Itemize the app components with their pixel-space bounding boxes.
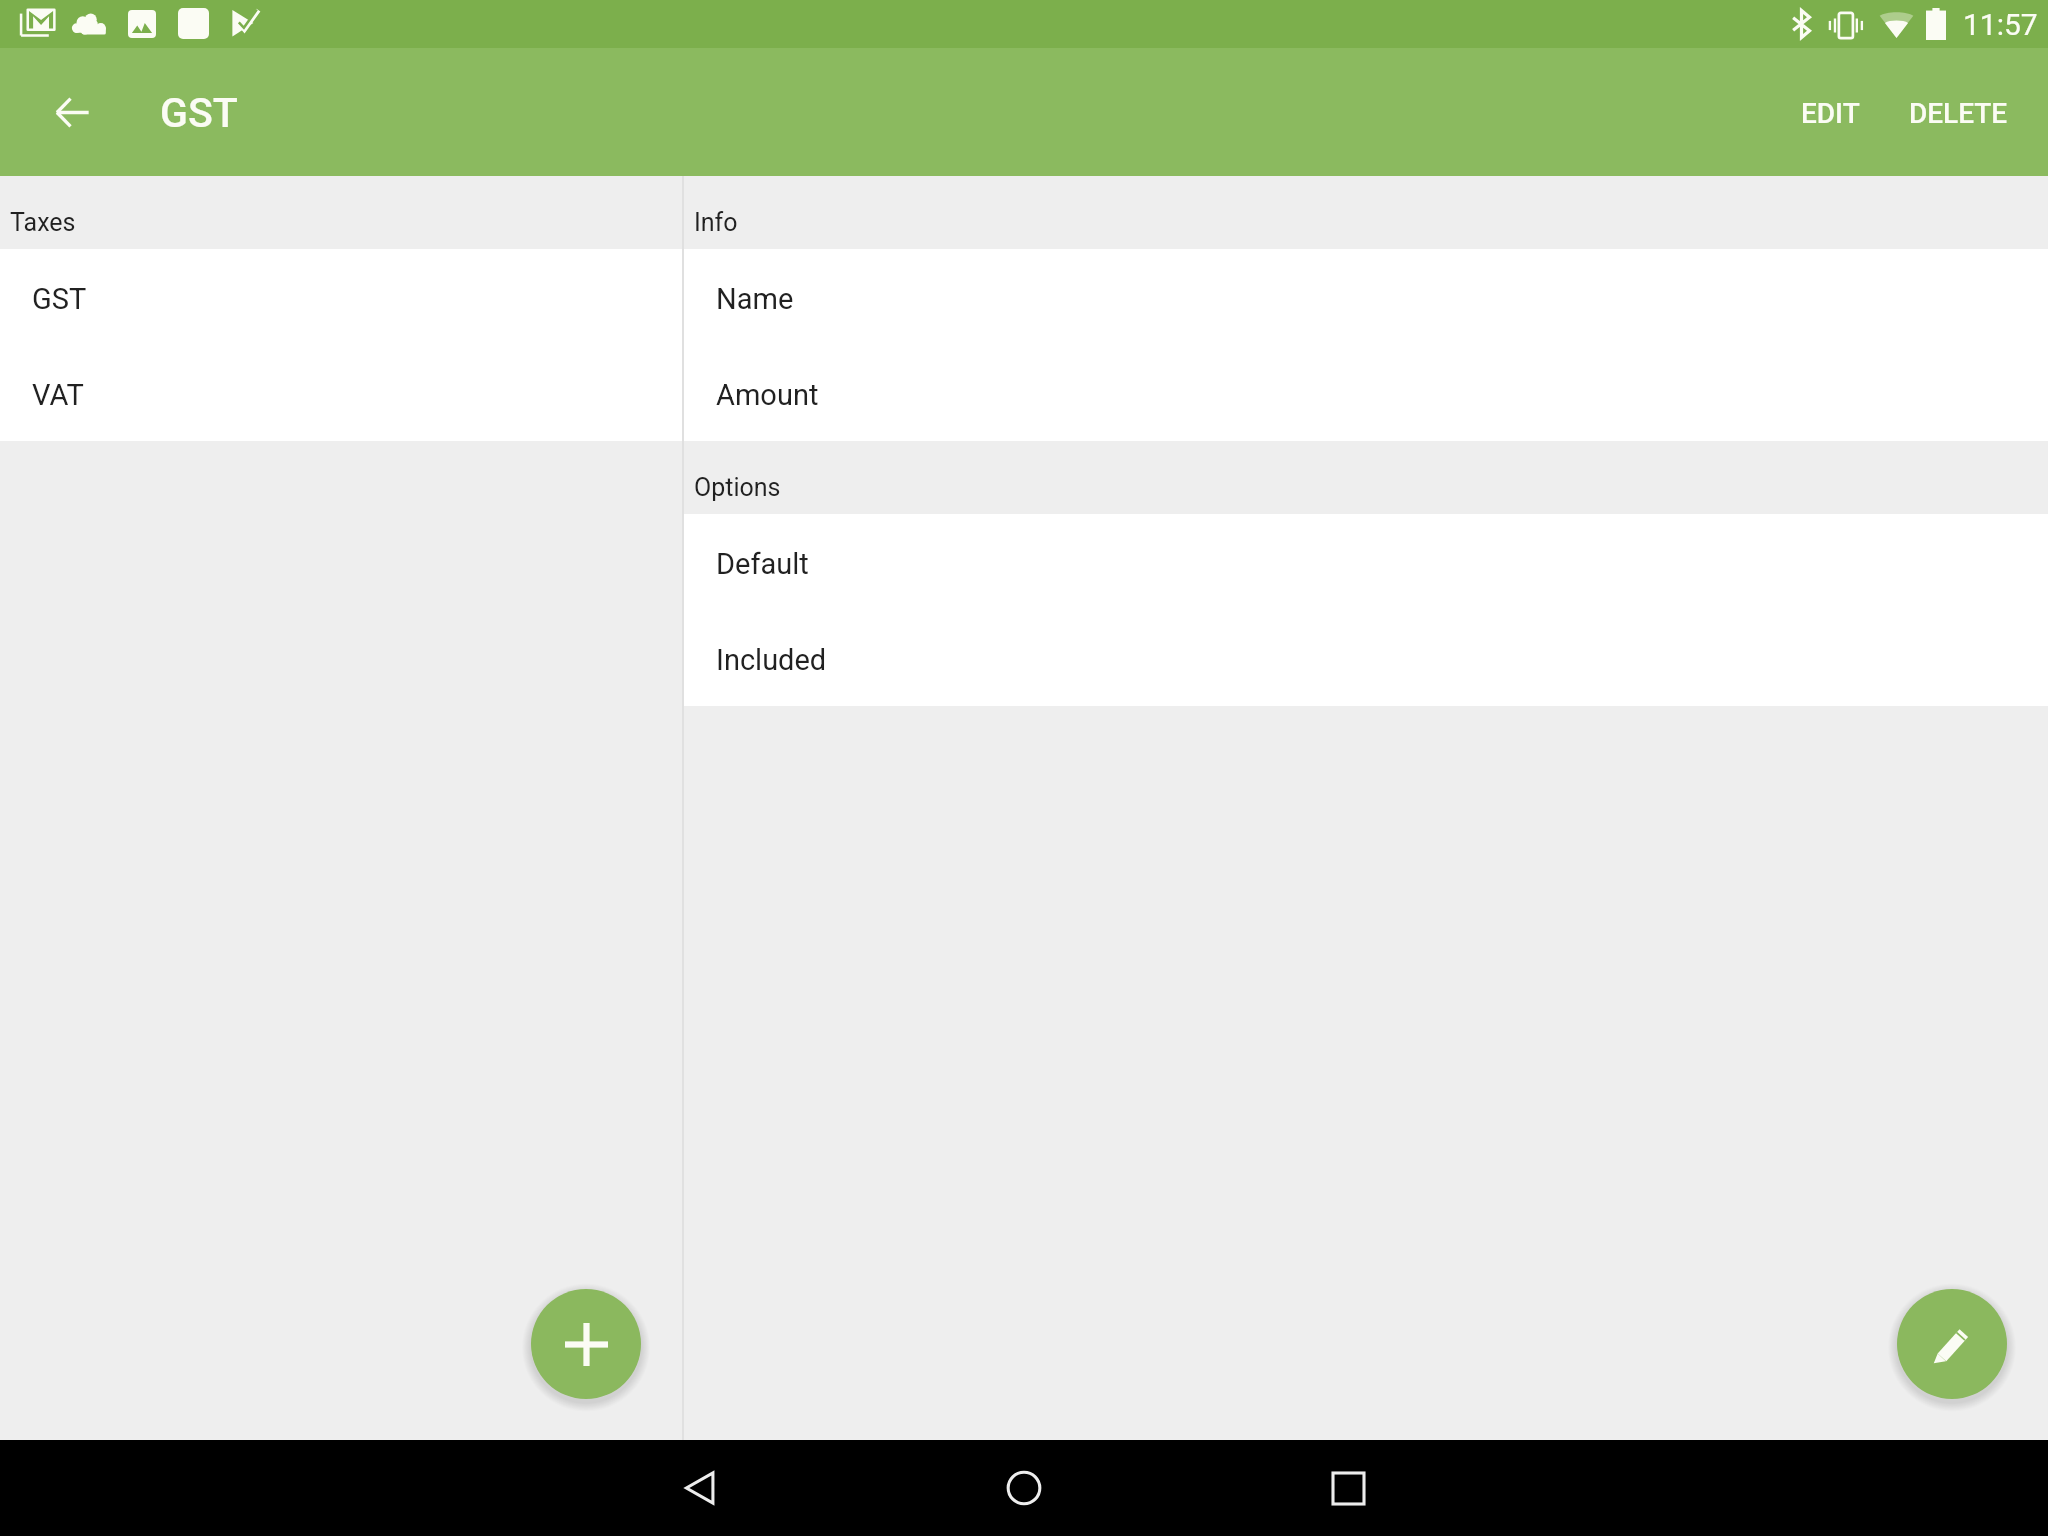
staticText: Included bbox=[716, 643, 827, 677]
staticText: Info bbox=[694, 208, 738, 237]
staticText: 11:57 bbox=[1963, 7, 2038, 42]
button[interactable]: Amount bbox=[684, 345, 2048, 441]
staticText: EDIT bbox=[1801, 97, 1860, 130]
staticText: VAT bbox=[32, 378, 84, 412]
button[interactable]: Recent apps bbox=[1300, 1440, 1396, 1536]
button[interactable]: Included bbox=[684, 610, 2048, 706]
staticText: DELETE bbox=[1909, 97, 2008, 130]
button[interactable]: Add new tax bbox=[531, 1289, 641, 1399]
button[interactable]: Home bbox=[976, 1440, 1072, 1536]
staticText: Options bbox=[694, 473, 781, 502]
button[interactable]: GST bbox=[0, 249, 682, 345]
staticText: Default bbox=[716, 547, 809, 581]
staticText: Name bbox=[716, 282, 794, 316]
button[interactable]: Edit bbox=[1897, 1289, 2007, 1399]
button[interactable]: EDIT bbox=[1777, 63, 1884, 164]
button[interactable]: Default bbox=[684, 514, 2048, 610]
button[interactable]: Navigate up bbox=[40, 80, 104, 144]
staticText: Taxes bbox=[10, 208, 76, 237]
button[interactable]: DELETE bbox=[1884, 63, 2048, 164]
staticText: GST bbox=[160, 89, 238, 137]
staticText: Amount bbox=[716, 378, 819, 412]
button[interactable]: Back bbox=[652, 1440, 748, 1536]
staticText: GST bbox=[32, 282, 87, 316]
button[interactable]: VAT bbox=[0, 345, 682, 441]
button[interactable]: Name bbox=[684, 249, 2048, 345]
